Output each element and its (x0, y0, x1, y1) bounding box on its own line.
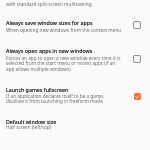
button[interactable]: Checked option (128, 87, 146, 105)
staticText: Always open apps in new windows (6, 47, 93, 54)
staticText: Forces an app to open a new window every… (6, 55, 121, 61)
staticText: Default window size (6, 118, 57, 125)
button[interactable]: Unchecked option (128, 50, 146, 68)
staticText: Always open apps in new windows (6, 47, 93, 54)
staticText: Always save window sizes for apps (6, 19, 93, 26)
staticText: Always save window sizes for apps (6, 19, 93, 26)
staticText: When opening new windows from the contex… (6, 27, 122, 33)
staticText: Launch games fullscreen (6, 86, 69, 93)
staticText: app allows multiple windows) (6, 66, 71, 72)
staticText: with standard split-screen multitasking. (6, 1, 93, 7)
staticText: selected from the start menu or recent a… (6, 60, 116, 66)
staticText: Launch games fullscreen (6, 86, 69, 93)
staticText: Default window size (6, 118, 57, 125)
staticText: If an application declares itself to be … (6, 93, 105, 99)
button[interactable]: Unchecked option (128, 16, 146, 34)
staticText: Half screen (left/top) (6, 124, 52, 130)
staticText: disallow it from launching in freeform m… (6, 98, 103, 104)
